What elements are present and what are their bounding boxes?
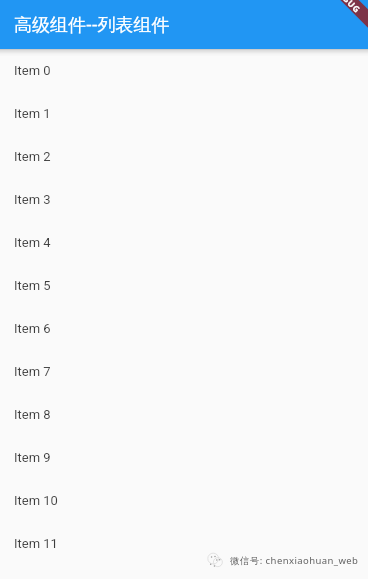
staticText: Item 8 <box>14 407 51 422</box>
button[interactable]: Item 0 <box>0 49 368 92</box>
staticText: Item 4 <box>14 235 51 250</box>
button[interactable]: Item 8 <box>0 393 368 436</box>
button[interactable]: Debug banner <box>301 0 368 45</box>
button[interactable]: Item 6 <box>0 307 368 350</box>
button[interactable]: Item 9 <box>0 436 368 479</box>
button[interactable]: Item 4 <box>0 221 368 264</box>
staticText: Item 0 <box>14 63 51 78</box>
button[interactable]: Item 11 <box>0 522 368 565</box>
staticText: Item 1 <box>14 106 51 121</box>
staticText: 微信号: chenxiaohuan_web <box>230 554 359 567</box>
staticText: 高级组件--列表组件 <box>14 12 170 37</box>
button[interactable]: Item 2 <box>0 135 368 178</box>
button[interactable]: Item 1 <box>0 92 368 135</box>
staticText: Item 5 <box>14 278 51 293</box>
staticText: Item 2 <box>14 149 51 164</box>
button[interactable]: Item 7 <box>0 350 368 393</box>
staticText: Item 6 <box>14 321 51 336</box>
staticText: Item 11 <box>14 536 58 551</box>
button[interactable]: Item 5 <box>0 264 368 307</box>
staticText: Item 3 <box>14 192 51 207</box>
staticText: Item 9 <box>14 450 51 465</box>
button[interactable]: Item 10 <box>0 479 368 522</box>
staticText: DEBUG <box>331 0 363 16</box>
staticText: Item 7 <box>14 364 51 379</box>
button[interactable]: Item 3 <box>0 178 368 221</box>
staticText: Item 10 <box>14 493 58 508</box>
